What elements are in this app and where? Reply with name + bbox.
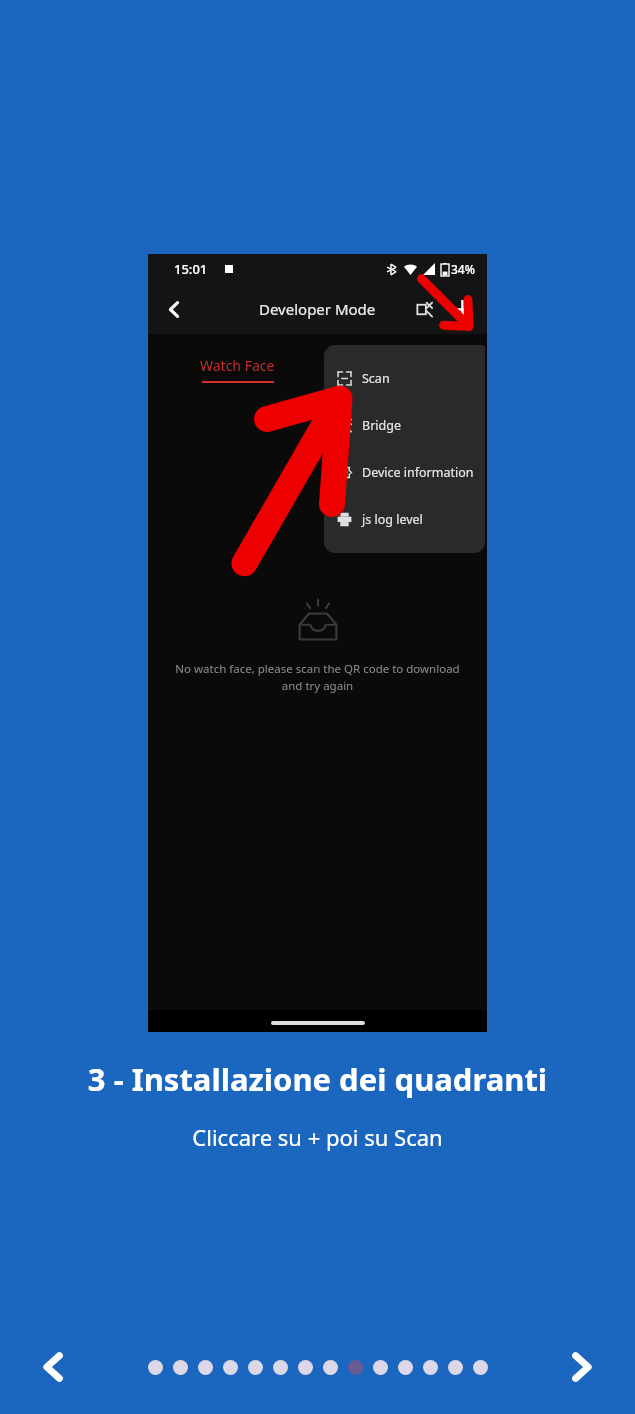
button[interactable]: Page 14 — [473, 1360, 488, 1375]
button[interactable]: Scan — [324, 355, 485, 402]
button[interactable]: Page 13 — [448, 1360, 463, 1375]
button[interactable]: Next — [553, 1339, 609, 1395]
button[interactable]: Page 2 — [173, 1360, 188, 1375]
button[interactable]: Bridge — [324, 402, 485, 449]
button[interactable]: Page 12 — [423, 1360, 438, 1375]
button[interactable]: js log level — [324, 496, 485, 543]
button[interactable]: Add — [443, 290, 481, 328]
button[interactable]: Bluetooth pair — [405, 290, 443, 328]
staticText: 15:01 — [174, 260, 208, 278]
staticText: Scan — [362, 370, 390, 387]
button[interactable]: Page 3 — [198, 1360, 213, 1375]
button[interactable]: Watch Face — [200, 356, 275, 383]
staticText: Cliccare su + poi su Scan — [0, 1122, 635, 1152]
staticText: Device information — [362, 464, 474, 481]
staticText: js log level — [362, 511, 423, 528]
button[interactable]: Back — [154, 289, 194, 329]
button[interactable]: Page 5 — [248, 1360, 263, 1375]
staticText: No watch face, please scan the QR code t… — [148, 661, 487, 693]
button[interactable]: Page 6 — [273, 1360, 288, 1375]
staticText: 3 - Installazione dei quadranti — [0, 1058, 635, 1100]
staticText: Watch Face — [200, 356, 275, 375]
button[interactable]: Page 8 — [323, 1360, 338, 1375]
button[interactable]: Page 10 — [373, 1360, 388, 1375]
button[interactable]: Page 7 — [298, 1360, 313, 1375]
staticText: 34% — [451, 261, 475, 277]
button[interactable]: Page 11 — [398, 1360, 413, 1375]
staticText: Bridge — [362, 417, 401, 434]
button[interactable]: Device information — [324, 449, 485, 496]
button[interactable]: Previous — [26, 1339, 82, 1395]
staticText: Developer Mode — [259, 299, 376, 319]
button[interactable]: Page 9 — [348, 1360, 363, 1375]
button[interactable]: Page 1 — [148, 1360, 163, 1375]
button[interactable]: Page 4 — [223, 1360, 238, 1375]
